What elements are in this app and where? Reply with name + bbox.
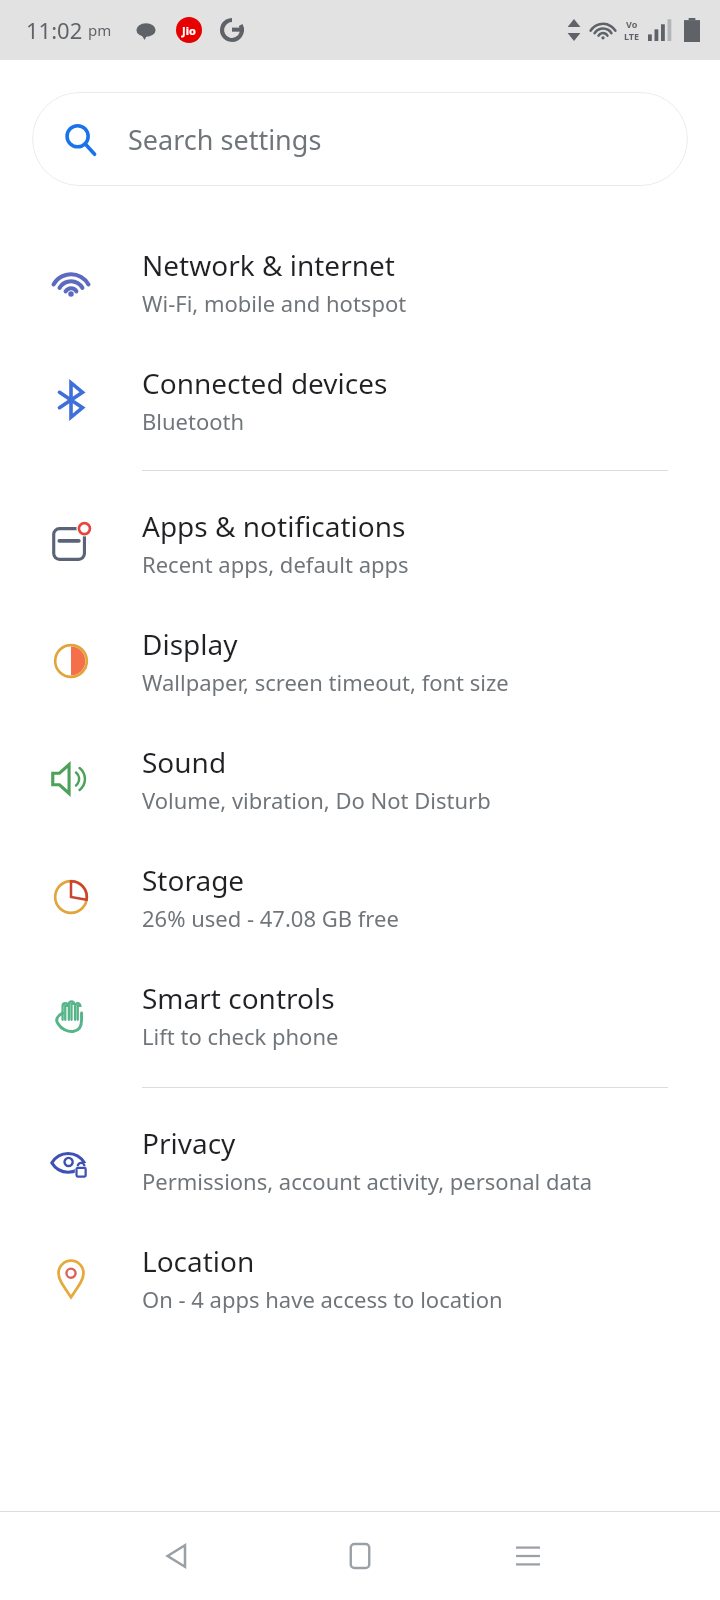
staticText: Volume, vibration, Do Not Disturb — [142, 785, 491, 815]
staticText: Wallpaper, screen timeout, font size — [142, 667, 509, 697]
staticText: Apps & notifications — [142, 507, 406, 545]
staticText: Connected devices — [142, 364, 388, 402]
button[interactable]: Connected devices — [0, 352, 720, 448]
staticText: Wi-Fi, mobile and hotspot — [142, 288, 407, 318]
button[interactable]: Smart controls — [0, 967, 720, 1063]
button[interactable]: Apps & notifications — [0, 495, 720, 591]
staticText: On - 4 apps have access to location — [142, 1284, 503, 1314]
staticText: LTE — [624, 30, 640, 42]
staticText: Search settings — [128, 121, 322, 158]
staticText: 11:02 — [26, 15, 83, 45]
staticText: pm — [88, 20, 112, 40]
staticText: Recent apps, default apps — [142, 549, 409, 579]
staticText: Bluetooth — [142, 406, 245, 436]
staticText: Display — [142, 625, 238, 663]
button[interactable]: Recent apps — [502, 1530, 554, 1582]
staticText: 26% used - 47.08 GB free — [142, 903, 399, 933]
staticText: Storage — [142, 861, 245, 899]
staticText: Permissions, account activity, personal … — [142, 1166, 593, 1196]
staticText: Jio — [182, 23, 196, 38]
staticText: Network & internet — [142, 246, 395, 284]
button[interactable]: Display — [0, 613, 720, 709]
button[interactable]: Home — [334, 1530, 386, 1582]
button[interactable]: Back — [150, 1530, 202, 1582]
button[interactable]: Sound — [0, 731, 720, 827]
staticText: Location — [142, 1242, 255, 1280]
staticText: Vo — [626, 18, 638, 30]
staticText: Lift to check phone — [142, 1021, 339, 1051]
button[interactable]: Search settings — [32, 92, 688, 186]
button[interactable]: Privacy — [0, 1112, 720, 1208]
staticText: Sound — [142, 743, 227, 781]
staticText: Smart controls — [142, 979, 335, 1017]
button[interactable]: Network & internet — [0, 234, 720, 330]
button[interactable]: Location — [0, 1230, 720, 1326]
button[interactable]: Storage — [0, 849, 720, 945]
staticText: Privacy — [142, 1124, 236, 1162]
